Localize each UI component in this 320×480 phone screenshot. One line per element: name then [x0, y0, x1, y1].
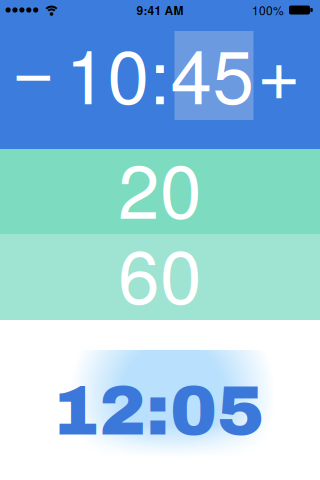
button[interactable]: Decrease: [11, 11, 55, 118]
button[interactable]: 20: [0, 149, 320, 234]
staticText: 60: [118, 219, 202, 325]
staticText: −: [11, 11, 55, 118]
button[interactable]: Increase: [257, 14, 301, 121]
staticText: 20: [118, 133, 202, 240]
button[interactable]: Minutes: [174, 31, 253, 120]
staticText: 9:41 AM: [136, 1, 183, 19]
staticText: 10:45: [65, 18, 254, 125]
staticText: 100%: [252, 1, 284, 19]
staticText: +: [257, 14, 301, 121]
button[interactable]: 60: [0, 234, 320, 320]
staticText: 12:05: [52, 372, 264, 449]
